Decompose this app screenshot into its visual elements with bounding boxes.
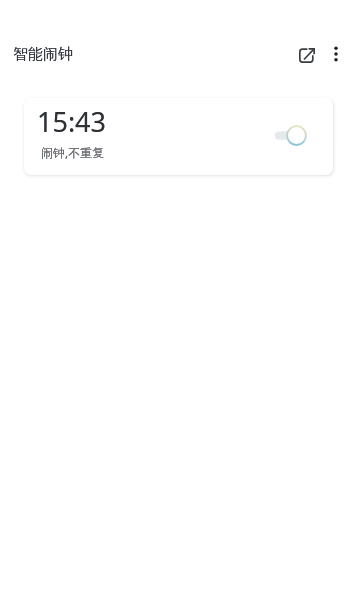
staticText: 15:43 (37, 103, 107, 140)
button[interactable]: 智能闹钟 (13, 45, 73, 64)
button[interactable]: 15:43 (24, 98, 333, 175)
button[interactable]: Open in new window (293, 41, 321, 69)
button[interactable]: More options (322, 40, 350, 68)
button[interactable]: Toggle alarm on or off (269, 116, 315, 156)
staticText: 智能闹钟 (13, 45, 73, 64)
staticText: 15:43 (37, 103, 107, 140)
staticText: 闹钟,不重复 (41, 144, 105, 160)
staticText: 智能闹钟 (13, 45, 73, 64)
staticText: 闹钟,不重复 (41, 144, 105, 160)
